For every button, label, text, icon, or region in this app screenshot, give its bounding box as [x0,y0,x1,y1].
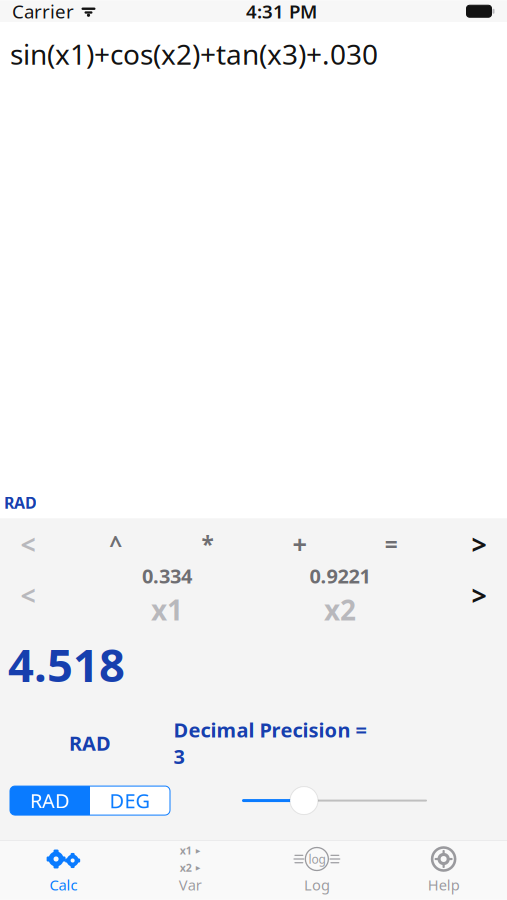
button[interactable]: x1 [127,845,254,895]
staticText: 0.334 [142,562,192,589]
staticText: > [471,526,486,562]
staticText: 0.9221 [309,562,370,589]
staticText: Var [179,875,202,894]
button[interactable]: * [178,524,238,564]
button[interactable]: ^ [86,524,146,564]
staticText: ▸ [196,845,201,856]
button[interactable]: = [361,524,421,564]
button[interactable]: Next operator [453,524,505,564]
staticText: DEG [109,787,150,814]
button[interactable]: Help [380,845,507,895]
staticText: ^ [109,529,122,559]
staticText: x2 [324,591,356,628]
button[interactable]: 0.9221 [280,564,400,626]
staticText: RAD [4,492,37,513]
staticText: < [20,577,35,613]
staticText: Decimal Precision = 3 [173,716,366,770]
button[interactable]: Previous operator [2,524,54,564]
staticText: Log [304,875,330,894]
button[interactable]: Next variable [453,564,505,626]
button[interactable]: Decimal precision slider [242,786,427,816]
staticText: = [385,529,398,559]
button[interactable]: 0.334 [107,564,227,626]
staticText: Calc [49,875,77,894]
staticText: RAD [30,787,70,814]
staticText: x2 [180,860,192,875]
staticText: log [308,851,325,867]
staticText: < [20,526,35,562]
staticText: sin(x1)+cos(x2)+tan(x3)+.030 [10,35,378,72]
staticText: 4:31 PM [246,0,317,24]
staticText: Carrier [12,0,74,24]
button[interactable]: Calc [0,845,127,895]
staticText: x1 [180,843,192,857]
staticText: RAD [69,730,111,756]
staticText: > [471,577,486,613]
staticText: * [202,529,214,559]
button[interactable]: + [269,524,329,564]
staticText: Help [428,875,460,894]
button[interactable]: log [253,845,380,895]
staticText: 4.518 [8,634,125,694]
staticText: x1 [151,591,183,628]
staticText: + [292,527,306,561]
button[interactable]: Angle mode, RAD selected [10,786,170,815]
button[interactable]: Previous variable [2,564,54,626]
staticText: ▸ [196,862,201,873]
